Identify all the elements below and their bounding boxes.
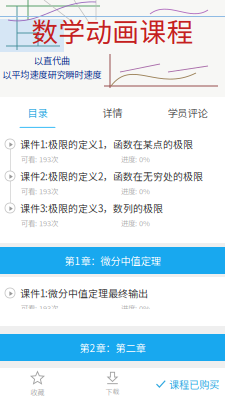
button[interactable]: 课件3:极限的定义3，数列的极限 bbox=[0, 192, 225, 224]
staticText: 可看: 193次 bbox=[21, 218, 58, 228]
staticText: 收藏 bbox=[30, 387, 44, 397]
staticText: 课件2:极限的定义2，函数在无穷处的极限 bbox=[20, 169, 203, 183]
staticText: 可看: 193次 bbox=[21, 186, 58, 196]
button[interactable]: 课件2:极限的定义2，函数在无穷处的极限 bbox=[0, 160, 225, 192]
button[interactable]: 课件1:微分中值定理最终输出 bbox=[0, 277, 225, 309]
staticText: 课件3:极限的定义3，数列的极限 bbox=[20, 201, 163, 215]
button[interactable]: 收藏 bbox=[0, 368, 75, 400]
button[interactable]: 下载 bbox=[75, 368, 150, 400]
staticText: 详情 bbox=[102, 105, 122, 120]
staticText: 进度: 0% bbox=[121, 186, 150, 196]
staticText: 以直代曲 bbox=[34, 54, 70, 67]
staticText: 进度: 0% bbox=[121, 218, 150, 228]
staticText: 课件1:极限的定义1，函数在某点的极限 bbox=[20, 137, 193, 151]
staticText: 课件1:微分中值定理最终输出 bbox=[20, 286, 148, 300]
staticText: 可看: 193次 bbox=[21, 154, 58, 164]
button[interactable]: 第1章：微分中值定理 bbox=[0, 247, 225, 274]
staticText: 可看: 193次 bbox=[21, 303, 58, 313]
staticText: 目录 bbox=[27, 105, 47, 120]
staticText: 进度: 0% bbox=[121, 154, 150, 164]
staticText: 第2章：第二章 bbox=[79, 340, 145, 355]
button[interactable]: 第2章：第二章 bbox=[0, 334, 225, 361]
button[interactable]: 学员评论 bbox=[150, 97, 225, 128]
button[interactable]: 目录 bbox=[0, 97, 75, 128]
button[interactable]: 课件1:极限的定义1，函数在某点的极限 bbox=[0, 128, 225, 160]
staticText: 以平均速度研究瞬时速度 bbox=[2, 68, 101, 81]
staticText: 学员评论 bbox=[167, 105, 207, 120]
button[interactable]: 课程已购买 bbox=[150, 368, 225, 400]
staticText: 课程已购买 bbox=[169, 377, 219, 391]
staticText: 数学动画课程 bbox=[31, 11, 193, 50]
staticText: 进度: 0% bbox=[121, 303, 150, 313]
staticText: 下载 bbox=[105, 386, 119, 396]
staticText: 第1章：微分中值定理 bbox=[64, 253, 160, 268]
button[interactable]: 详情 bbox=[75, 97, 150, 128]
